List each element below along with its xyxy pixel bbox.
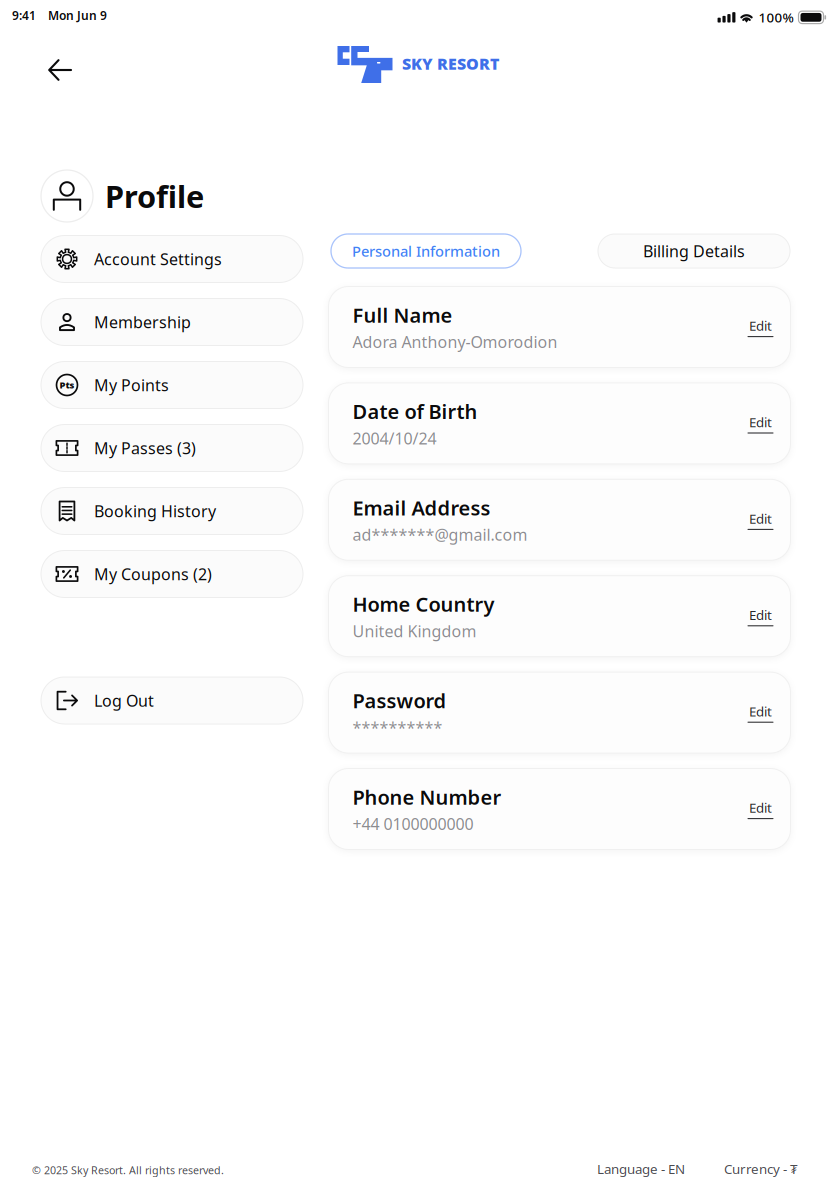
staticText: Personal Information: [352, 241, 500, 261]
staticText: Currency - ₮: [724, 1160, 798, 1178]
staticText: Edit: [749, 606, 772, 624]
staticText: +44 0100000000: [352, 813, 473, 834]
staticText: Pts: [59, 379, 74, 391]
staticText: Full Name: [352, 302, 452, 328]
button[interactable]: Billing Details: [598, 234, 790, 268]
button[interactable]: Log Out: [41, 677, 303, 724]
staticText: Membership: [94, 311, 191, 333]
button[interactable]: Membership: [41, 298, 303, 345]
button[interactable]: Language - EN: [597, 1160, 685, 1178]
staticText: Edit: [749, 702, 772, 720]
button[interactable]: My Coupons (2): [41, 550, 303, 597]
staticText: Date of Birth: [352, 398, 477, 425]
staticText: Edit: [749, 317, 772, 334]
button[interactable]: Edit: [747, 510, 790, 530]
staticText: Password: [352, 687, 446, 714]
button[interactable]: My Passes (3): [41, 424, 303, 471]
staticText: **********: [352, 717, 442, 738]
staticText: Language - EN: [597, 1160, 685, 1178]
staticText: Mon Jun 9: [48, 7, 107, 23]
button[interactable]: Back: [38, 48, 82, 92]
staticText: 9:41: [12, 7, 36, 23]
staticText: Log Out: [94, 690, 154, 711]
button[interactable]: Edit: [747, 606, 790, 626]
staticText: Booking History: [94, 500, 216, 522]
staticText: My Points: [94, 374, 169, 396]
button[interactable]: Edit: [747, 799, 790, 819]
staticText: ad*******@gmail.com: [352, 524, 527, 545]
button[interactable]: Booking History: [41, 487, 303, 534]
staticText: 100%: [758, 8, 793, 26]
staticText: United Kingdom: [352, 620, 476, 642]
staticText: Billing Details: [643, 240, 745, 262]
staticText: Phone Number: [352, 784, 501, 810]
staticText: Email Address: [352, 494, 490, 521]
button[interactable]: Edit: [747, 317, 790, 337]
button[interactable]: Currency - ₮: [724, 1160, 798, 1178]
staticText: Profile: [105, 176, 204, 216]
staticText: Adora Anthony-Omorodion: [352, 331, 557, 352]
button[interactable]: Pts: [41, 361, 303, 408]
staticText: Account Settings: [94, 248, 222, 270]
staticText: My Coupons (2): [94, 563, 212, 585]
staticText: © 2025 Sky Resort. All rights reserved.: [32, 1163, 224, 1177]
staticText: SKY RESORT: [402, 53, 499, 74]
button[interactable]: Edit: [747, 413, 790, 433]
staticText: Edit: [749, 799, 772, 816]
staticText: Edit: [749, 413, 772, 431]
button[interactable]: Account Settings: [41, 235, 303, 282]
button[interactable]: Personal Information: [331, 234, 521, 268]
staticText: Home Country: [352, 591, 494, 617]
staticText: Edit: [749, 510, 772, 527]
staticText: My Passes (3): [94, 437, 196, 459]
staticText: 2004/10/24: [352, 428, 436, 449]
button[interactable]: Edit: [747, 702, 790, 723]
